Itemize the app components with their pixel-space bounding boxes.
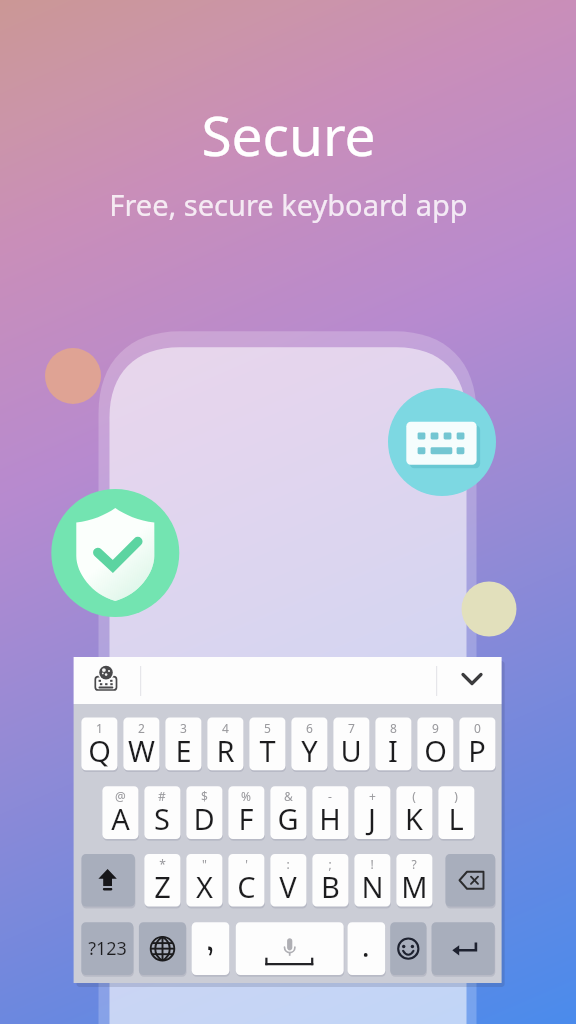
staticText: + — [369, 788, 376, 804]
staticText: 6 — [306, 720, 313, 736]
button[interactable]: & — [270, 786, 306, 839]
staticText: ) — [454, 788, 458, 804]
button[interactable]: 6 — [291, 718, 327, 771]
button[interactable]: Enter — [432, 922, 495, 975]
staticText: # — [158, 788, 166, 804]
staticText: B — [321, 867, 340, 906]
staticText: P — [468, 731, 486, 770]
staticText: S — [154, 799, 170, 838]
staticText: E — [175, 731, 192, 770]
button[interactable]: * — [144, 854, 180, 907]
staticText: 5 — [264, 720, 271, 736]
button[interactable]: Shift — [81, 854, 135, 907]
staticText: Y — [301, 731, 318, 770]
staticText: D — [193, 799, 215, 838]
staticText: K — [405, 799, 423, 838]
staticText: V — [279, 867, 297, 906]
button[interactable]: Change keyboard language — [88, 660, 128, 700]
button[interactable]: 7 — [333, 718, 369, 771]
staticText: @ — [115, 788, 126, 804]
button[interactable]: ?123 — [81, 922, 133, 975]
staticText: " — [202, 856, 207, 872]
staticText: : — [286, 856, 290, 872]
staticText: X — [196, 867, 213, 906]
staticText: Z — [154, 867, 171, 906]
staticText: ( — [412, 788, 416, 804]
button[interactable]: Switch language — [139, 922, 186, 975]
staticText: Free, secure keyboard app — [109, 185, 468, 224]
button[interactable]: % — [228, 786, 264, 839]
button[interactable]: 8 — [375, 718, 411, 771]
button[interactable]: ( — [396, 786, 432, 839]
button[interactable]: Secure — [0, 0, 576, 1024]
staticText: Q — [88, 731, 111, 770]
button[interactable]: Space — [236, 922, 344, 975]
staticText: G — [277, 799, 299, 838]
button[interactable]: - — [312, 786, 348, 839]
staticText: L — [448, 799, 464, 838]
staticText: T — [259, 731, 276, 770]
staticText: H — [319, 799, 341, 838]
button[interactable]: 2 — [123, 718, 159, 771]
button[interactable]: + — [354, 786, 390, 839]
staticText: U — [340, 731, 362, 770]
staticText: ? — [411, 856, 417, 872]
button[interactable]: @ — [102, 786, 138, 839]
staticText: M — [401, 867, 428, 906]
staticText: ?123 — [88, 936, 127, 961]
button[interactable]: : — [270, 854, 306, 907]
staticText: * — [159, 856, 166, 872]
staticText: O — [424, 731, 447, 770]
button[interactable]: " — [186, 854, 222, 907]
staticText: A — [111, 799, 130, 838]
staticText: ; — [328, 856, 332, 872]
staticText: R — [216, 731, 235, 770]
staticText: 2 — [138, 720, 145, 736]
button[interactable]: 3 — [165, 718, 201, 771]
button[interactable]: Emoji — [390, 922, 426, 975]
button[interactable]: 0 — [459, 718, 495, 771]
button[interactable]: 9 — [417, 718, 453, 771]
staticText: - — [328, 788, 332, 804]
staticText: J — [368, 799, 376, 838]
staticText: 1 — [96, 720, 103, 736]
button[interactable]: 4 — [207, 718, 243, 771]
button[interactable]: ' — [228, 854, 264, 907]
button[interactable]: ? — [396, 854, 432, 907]
staticText: 4 — [222, 720, 229, 736]
staticText: 3 — [180, 720, 187, 736]
button[interactable]: ; — [312, 854, 348, 907]
staticText: ' — [245, 856, 248, 872]
staticText: % — [241, 788, 251, 804]
staticText: 0 — [474, 720, 481, 736]
button[interactable]: ) — [438, 786, 474, 839]
staticText: 9 — [432, 720, 439, 736]
button[interactable]: Backspace — [445, 854, 495, 907]
staticText: $ — [201, 788, 208, 804]
staticText: 8 — [390, 720, 397, 736]
button[interactable]: Hide keyboard — [436, 657, 503, 704]
staticText: F — [238, 799, 254, 838]
staticText: I — [388, 731, 398, 770]
button[interactable]: $ — [186, 786, 222, 839]
button[interactable]: 1 — [81, 718, 117, 771]
button[interactable]: # — [144, 786, 180, 839]
staticText: & — [284, 788, 293, 804]
button[interactable]: ! — [354, 854, 390, 907]
staticText: 7 — [348, 720, 355, 736]
staticText: C — [237, 867, 256, 906]
staticText: W — [128, 731, 155, 770]
staticText: Secure — [201, 97, 376, 172]
staticText: N — [361, 867, 384, 906]
button[interactable]: 5 — [249, 718, 285, 771]
staticText: ! — [370, 856, 374, 872]
